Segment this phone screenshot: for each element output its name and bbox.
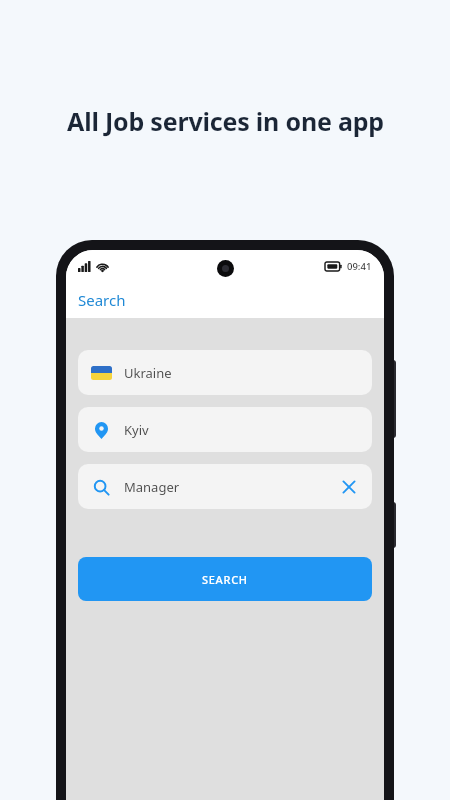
button[interactable]: Ukraine bbox=[78, 350, 372, 395]
button[interactable]: Clear search text bbox=[338, 476, 360, 498]
button[interactable]: Manager bbox=[78, 464, 372, 509]
staticText: Manager bbox=[124, 478, 180, 496]
staticText: SEARCH bbox=[202, 572, 248, 587]
staticText: Ukraine bbox=[124, 364, 172, 382]
staticText: Kyiv bbox=[124, 421, 149, 439]
staticText: Search bbox=[78, 290, 126, 310]
staticText: 09:41 bbox=[347, 260, 372, 273]
button[interactable]: SEARCH bbox=[78, 557, 372, 601]
staticText: All Job services in one app bbox=[67, 104, 384, 138]
button[interactable]: Kyiv bbox=[78, 407, 372, 452]
